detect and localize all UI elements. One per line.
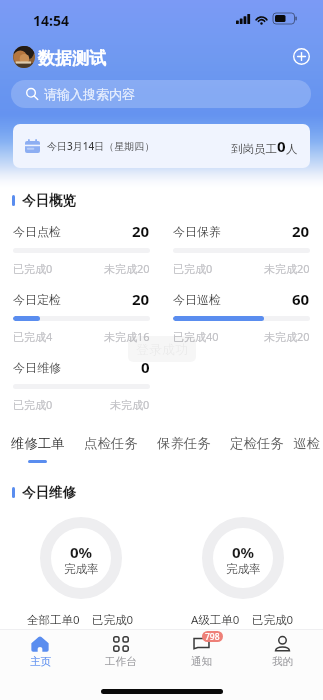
staticText: 维修工单: [11, 435, 65, 452]
button[interactable]: 798: [161, 630, 242, 671]
staticText: 今日点检: [13, 224, 61, 239]
staticText: 未完成16: [104, 329, 150, 344]
staticText: 20: [292, 221, 310, 239]
staticText: 完成率: [226, 562, 261, 576]
button[interactable]: 工作台: [80, 630, 161, 671]
staticText: 已完成0: [173, 261, 213, 276]
staticText: 未完成20: [264, 329, 310, 344]
staticText: 请输入搜索内容: [44, 86, 135, 102]
staticText: 今日维修: [22, 484, 76, 501]
button[interactable]: 点检任务: [74, 430, 147, 463]
staticText: 已完成0: [13, 397, 53, 412]
staticText: 数据测试: [38, 48, 106, 69]
staticText: 已完成0: [252, 612, 294, 628]
staticText: 登录成功: [136, 341, 188, 357]
staticText: 60: [292, 289, 310, 307]
staticText: 人: [286, 142, 298, 156]
staticText: 今日3月14日（星期四）: [47, 139, 155, 153]
staticText: 未完成20: [264, 261, 310, 276]
staticText: 今日保养: [173, 224, 221, 239]
staticText: 0%: [232, 542, 255, 562]
staticText: 工作台: [105, 655, 137, 668]
staticText: 已完成0: [92, 612, 134, 628]
button[interactable]: 今日3月14日（星期四）: [13, 124, 310, 168]
staticText: 我的: [272, 655, 293, 668]
button[interactable]: 保养任务: [147, 430, 220, 463]
staticText: 14:54: [33, 11, 69, 30]
staticText: 巡检任务: [293, 435, 323, 452]
staticText: 0%: [70, 542, 93, 562]
staticText: 未完成20: [104, 261, 150, 276]
button[interactable]: 维修工单: [1, 430, 74, 463]
staticText: 已完成4: [13, 329, 53, 344]
staticText: 0: [277, 136, 286, 156]
staticText: 已完成40: [173, 329, 219, 344]
button[interactable]: 巡检任务: [293, 430, 323, 463]
staticText: 通知: [191, 655, 212, 668]
staticText: 今日概览: [22, 192, 76, 209]
staticText: 定检任务: [230, 435, 284, 452]
staticText: 今日维修: [13, 360, 61, 375]
staticText: 点检任务: [84, 435, 138, 452]
staticText: A级工单0: [191, 612, 240, 628]
staticText: 20: [132, 289, 150, 307]
staticText: 今日定检: [13, 292, 61, 307]
staticText: 完成率: [64, 562, 99, 576]
staticText: 未完成0: [110, 397, 150, 412]
button[interactable]: 主页: [0, 630, 80, 671]
staticText: 20: [132, 221, 150, 239]
button[interactable]: Profile: [13, 46, 35, 68]
staticText: 到岗员工: [231, 142, 277, 156]
staticText: 已完成0: [13, 261, 53, 276]
staticText: 0: [141, 357, 150, 375]
staticText: 今日巡检: [173, 292, 221, 307]
staticText: 主页: [30, 655, 51, 668]
button[interactable]: 请输入搜索内容: [11, 80, 311, 108]
staticText: 全部工单0: [27, 612, 80, 628]
button[interactable]: 定检任务: [220, 430, 293, 463]
staticText: 798: [205, 631, 220, 642]
button[interactable]: Add: [290, 45, 313, 68]
button[interactable]: 我的: [242, 630, 323, 671]
staticText: 保养任务: [157, 435, 211, 452]
